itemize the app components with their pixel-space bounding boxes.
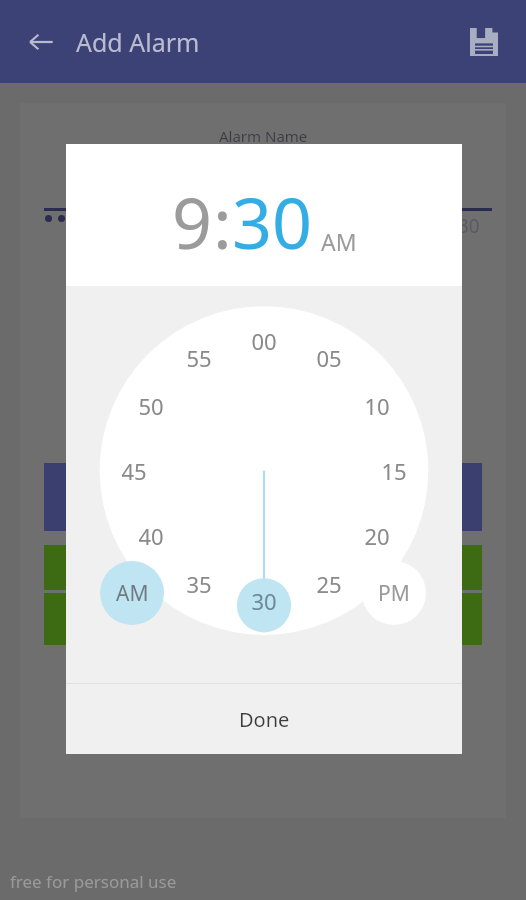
- staticText: 00: [251, 326, 277, 356]
- button[interactable]: 25: [307, 569, 351, 599]
- staticText: 55: [186, 343, 212, 373]
- button[interactable]: AM: [100, 561, 164, 625]
- button[interactable]: 30: [232, 174, 313, 269]
- staticText: 45: [121, 456, 147, 486]
- button[interactable]: 40: [129, 521, 173, 551]
- button[interactable]: 20: [355, 521, 399, 551]
- staticText: 10: [364, 391, 390, 421]
- staticText: AM: [116, 579, 149, 608]
- staticText: Done: [239, 706, 290, 733]
- staticText: Alarm Name: [219, 126, 308, 146]
- button[interactable]: 9: [172, 174, 213, 269]
- staticText: PM: [378, 579, 410, 608]
- button[interactable]: AM: [321, 226, 357, 257]
- button[interactable]: 50: [129, 391, 173, 421]
- button[interactable]: Back: [14, 15, 68, 69]
- button[interactable]: 55: [177, 343, 221, 373]
- staticText: 30: [251, 586, 277, 616]
- button[interactable]: 15: [372, 456, 416, 486]
- staticText: 30: [458, 213, 480, 239]
- button[interactable]: PM: [362, 561, 426, 625]
- button[interactable]: 00: [242, 326, 286, 356]
- staticText: 25: [316, 569, 342, 599]
- button[interactable]: Save: [458, 16, 510, 68]
- button[interactable]: 30: [242, 586, 286, 616]
- staticText: 05: [316, 343, 342, 373]
- staticText: 40: [138, 521, 164, 551]
- staticText: 15: [381, 456, 407, 486]
- button[interactable]: 45: [112, 456, 156, 486]
- staticText: 20: [364, 521, 390, 551]
- button[interactable]: Done: [66, 684, 462, 754]
- staticText: 50: [138, 391, 164, 421]
- button[interactable]: 05: [307, 343, 351, 373]
- staticText: free for personal use: [10, 870, 177, 893]
- staticText: :: [213, 174, 232, 269]
- staticText: 35: [186, 569, 212, 599]
- button[interactable]: 10: [355, 391, 399, 421]
- button[interactable]: 35: [177, 569, 221, 599]
- staticText: Add Alarm: [76, 25, 200, 59]
